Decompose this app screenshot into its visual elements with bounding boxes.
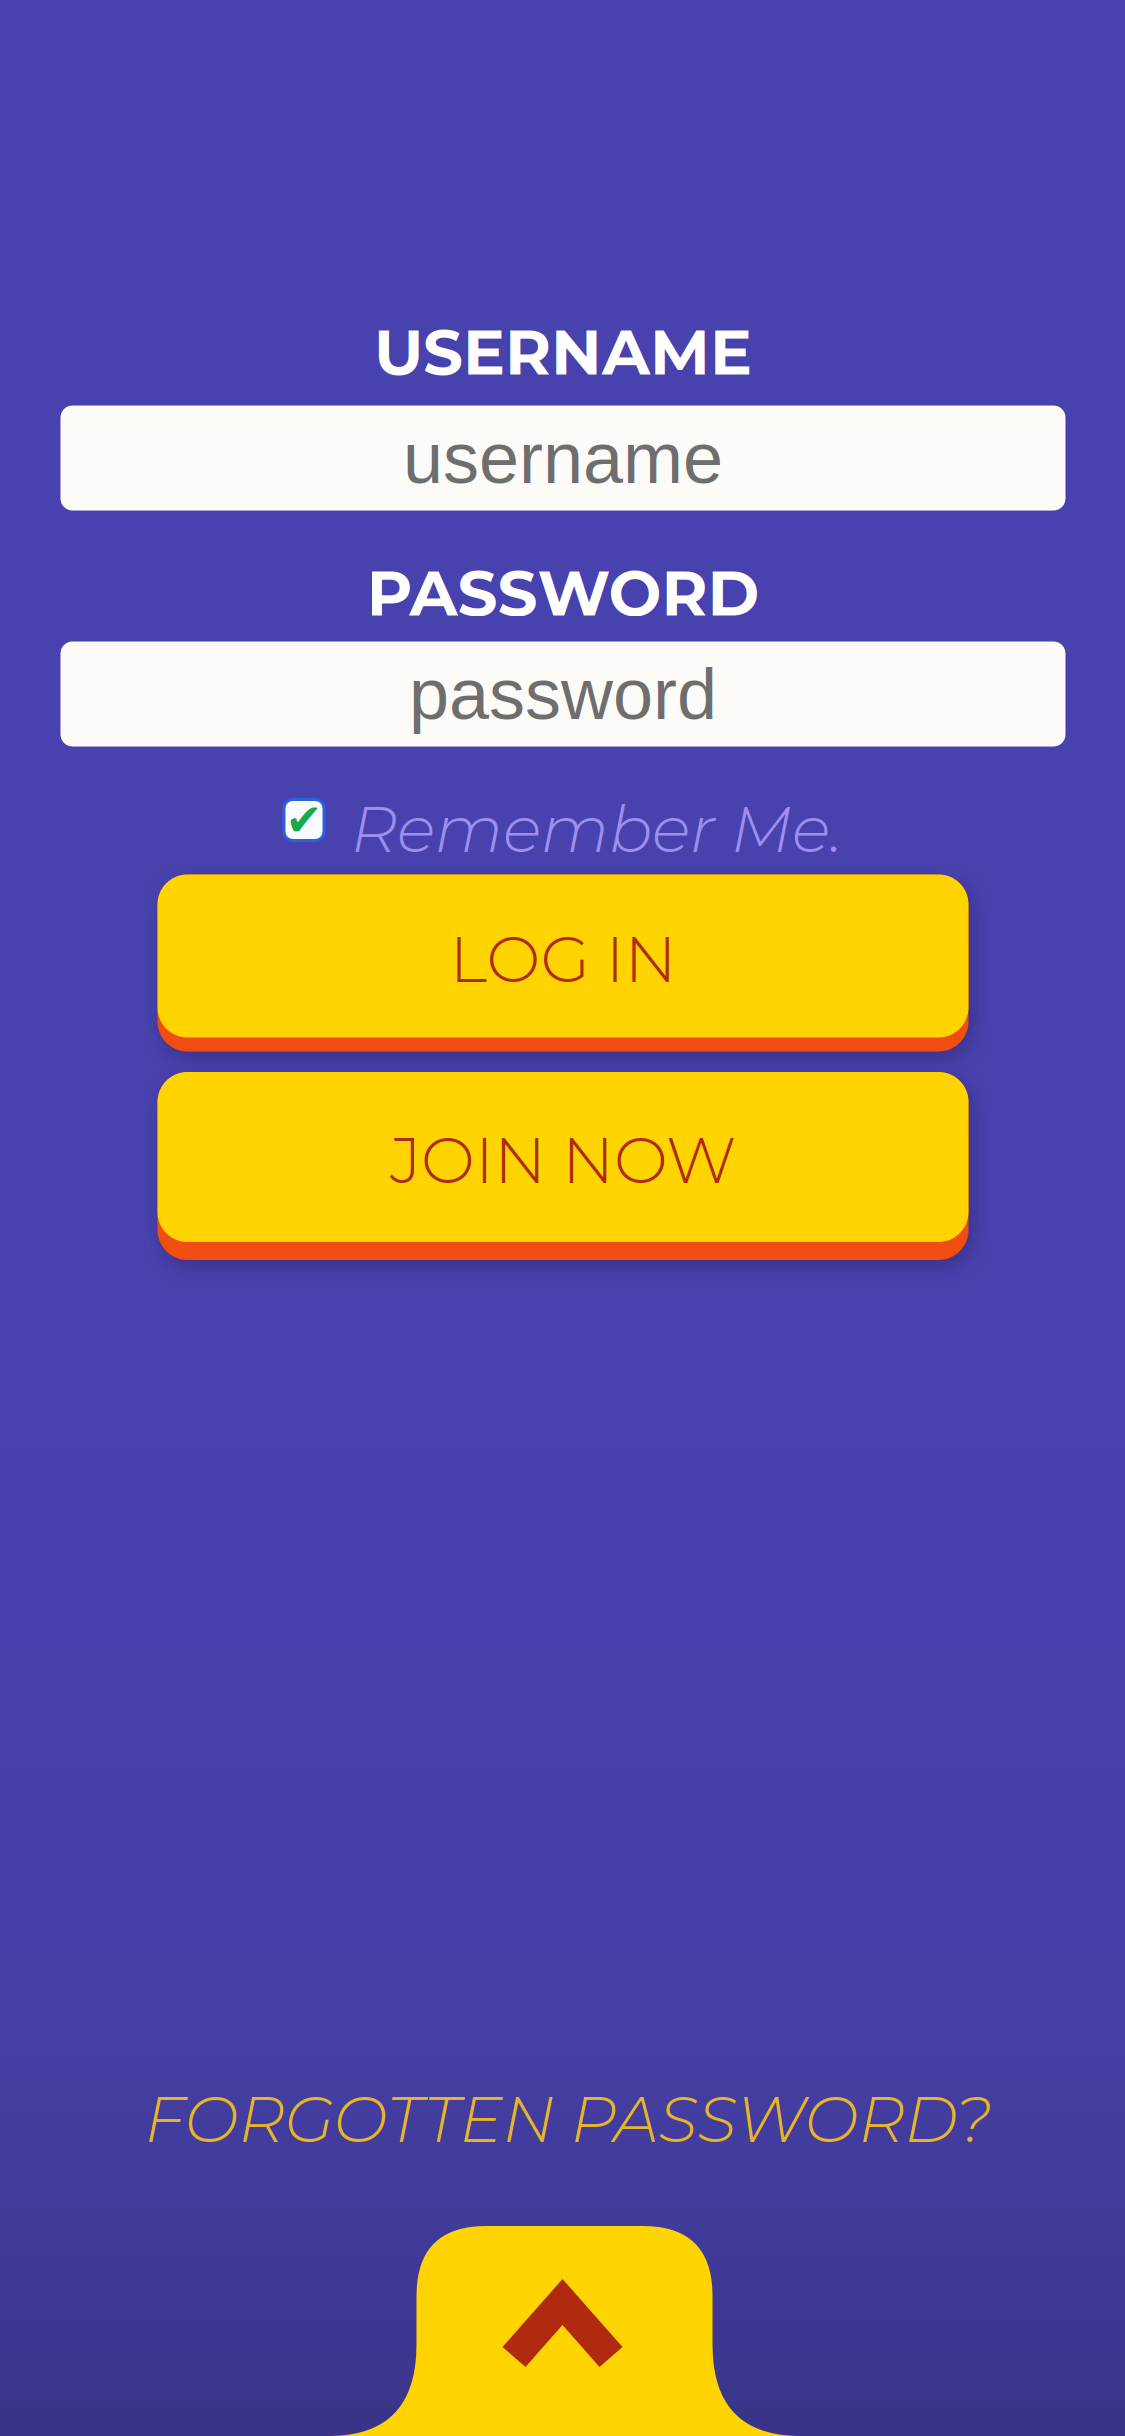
- staticText: ✔: [285, 795, 322, 845]
- button[interactable]: Remember Me.: [351, 790, 843, 868]
- staticText: JOIN NOW: [390, 1121, 736, 1199]
- button[interactable]: Remember me: [278, 794, 330, 846]
- staticText: password: [409, 654, 717, 734]
- staticText: username: [403, 418, 723, 498]
- staticText: LOG IN: [449, 920, 676, 998]
- staticText: PASSWORD: [366, 555, 759, 631]
- button[interactable]: LOG IN: [157, 874, 968, 1051]
- staticText: FORGOTTEN PASSWORD?: [144, 2080, 991, 2158]
- staticText: Remember Me.: [351, 790, 843, 868]
- staticText: USERNAME: [374, 314, 752, 390]
- button[interactable]: JOIN NOW: [157, 1072, 968, 1260]
- button[interactable]: Expand: [0, 2226, 1125, 2436]
- button[interactable]: FORGOTTEN PASSWORD?: [144, 2080, 991, 2158]
